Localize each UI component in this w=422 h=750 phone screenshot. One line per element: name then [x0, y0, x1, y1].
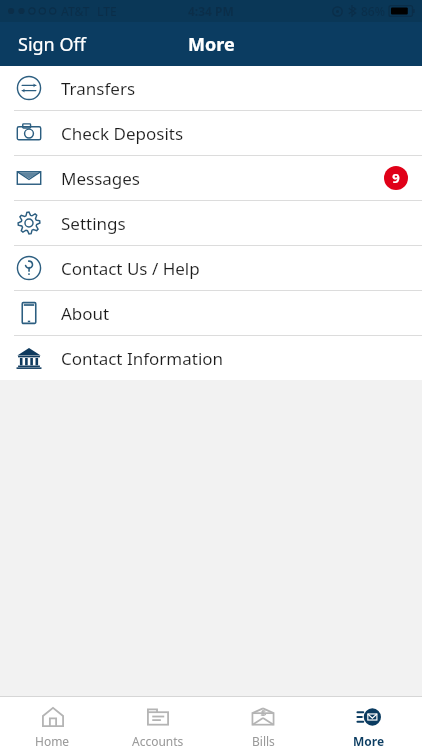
staticText: Sign Off	[18, 32, 86, 57]
button[interactable]: Settings	[0, 201, 422, 245]
staticText: More	[353, 733, 385, 749]
button[interactable]: Contact Us / Help	[0, 246, 422, 290]
button[interactable]: Sign Off	[0, 22, 104, 66]
button[interactable]: Bills	[210, 697, 316, 750]
button[interactable]: More	[316, 697, 422, 750]
staticText: Settings	[61, 212, 126, 235]
button[interactable]: Check Deposits	[0, 111, 422, 155]
staticText: Contact Information	[61, 347, 224, 370]
staticText: LTE	[97, 3, 117, 19]
staticText: Transfers	[61, 77, 136, 100]
button[interactable]: About	[0, 291, 422, 335]
staticText: About	[61, 302, 110, 325]
button[interactable]: Contact Information	[0, 336, 422, 380]
staticText: More	[188, 32, 235, 57]
staticText: Check Deposits	[61, 122, 184, 145]
staticText: 9	[392, 169, 400, 187]
staticText: Bills	[252, 733, 275, 749]
staticText: 4:34 PM	[188, 3, 234, 19]
staticText: Messages	[61, 167, 141, 190]
staticText: 86%	[361, 3, 385, 19]
staticText: Accounts	[132, 733, 184, 749]
button[interactable]: Accounts	[105, 697, 210, 750]
staticText: Contact Us / Help	[61, 257, 200, 280]
staticText: AT&T	[61, 3, 90, 19]
button[interactable]: Messages	[0, 156, 422, 200]
staticText: Home	[35, 733, 70, 749]
button[interactable]: Home	[0, 697, 105, 750]
button[interactable]: Transfers	[0, 66, 422, 110]
